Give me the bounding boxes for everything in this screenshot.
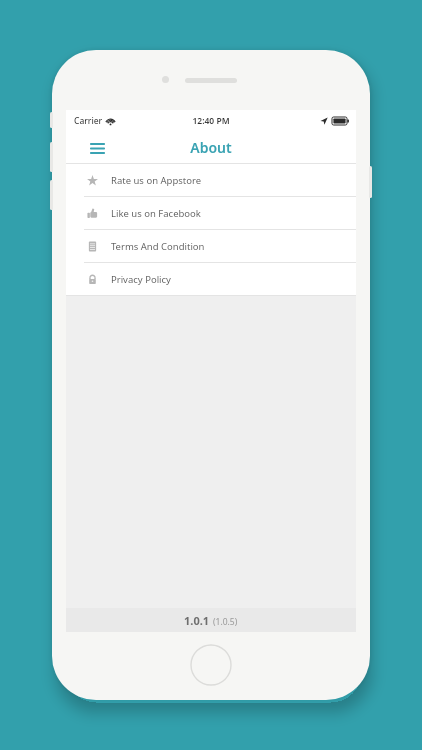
button[interactable]: Privacy Policy bbox=[66, 263, 356, 295]
staticText: Like us on Facebook bbox=[111, 207, 201, 220]
staticText: 12:40 PM bbox=[192, 115, 230, 127]
staticText: Privacy Policy bbox=[111, 273, 171, 286]
staticText: 1.0.1 bbox=[184, 613, 210, 628]
staticText: Rate us on Appstore bbox=[111, 174, 202, 187]
staticText: Carrier bbox=[74, 115, 103, 127]
button[interactable]: Rate us on Appstore bbox=[66, 164, 356, 196]
staticText: (1.0.5) bbox=[213, 616, 238, 628]
button[interactable]: Terms And Condition bbox=[66, 230, 356, 262]
button[interactable]: Open navigation menu bbox=[84, 135, 110, 161]
button[interactable]: Like us on Facebook bbox=[66, 197, 356, 229]
staticText: Terms And Condition bbox=[111, 240, 205, 253]
staticText: About bbox=[190, 138, 232, 157]
